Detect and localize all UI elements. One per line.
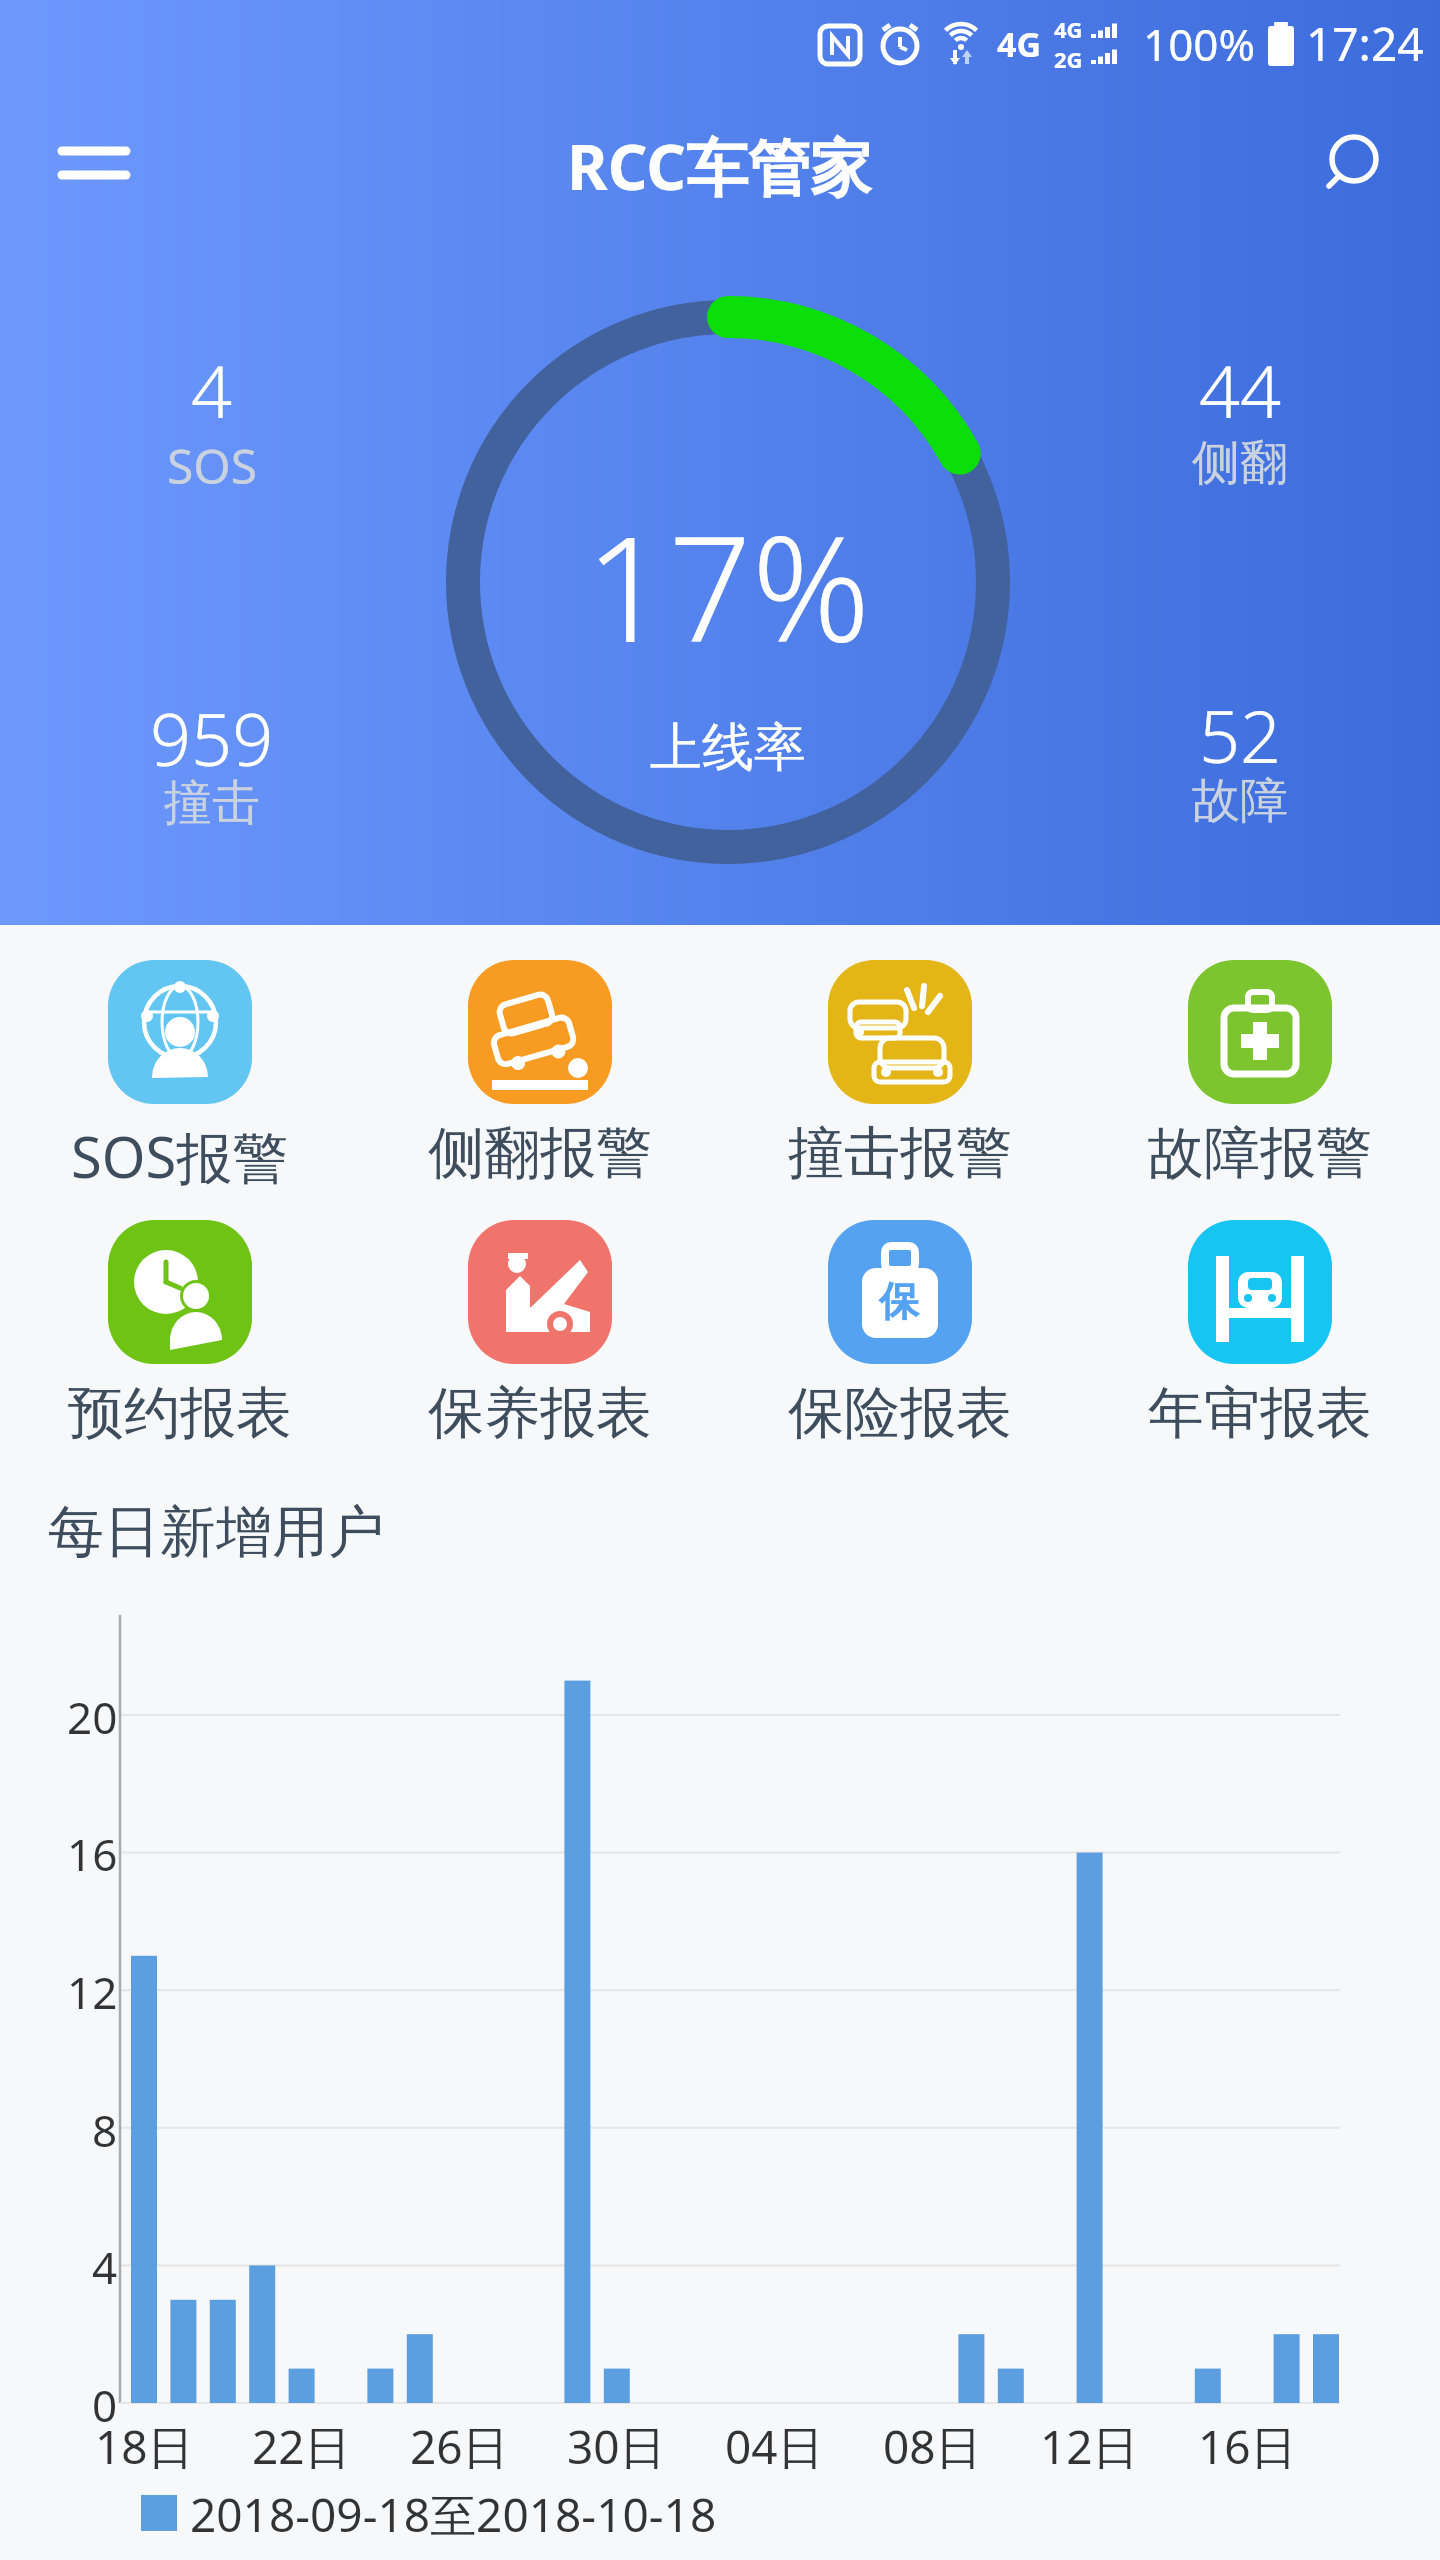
staticText: 08日: [883, 2415, 982, 2471]
staticText: 18日: [95, 2415, 194, 2471]
staticText: 12: [67, 1962, 118, 2018]
staticText: 04日: [725, 2415, 824, 2471]
staticText: 预约报表: [68, 1378, 292, 1449]
button[interactable]: 预约报表: [10, 1220, 350, 1470]
staticText: 100%: [1143, 14, 1256, 74]
button[interactable]: 年审报表: [1090, 1220, 1430, 1470]
button[interactable]: 撞击报警: [730, 960, 1070, 1210]
staticText: 4G: [1054, 14, 1083, 44]
staticText: 故障: [1192, 771, 1288, 831]
button[interactable]: 保: [730, 1220, 1070, 1470]
button[interactable]: 保养报表: [370, 1220, 710, 1470]
staticText: 52: [1199, 686, 1282, 776]
staticText: 959: [150, 689, 274, 779]
staticText: 保养报表: [428, 1378, 652, 1449]
staticText: 0: [92, 2375, 118, 2431]
button[interactable]: [58, 138, 130, 190]
staticText: 20: [67, 1687, 118, 1743]
staticText: 26日: [410, 2415, 509, 2471]
staticText: 17%: [585, 486, 871, 666]
staticText: SOS报警: [71, 1118, 289, 1194]
staticText: 2018-09-18至2018-10-18: [190, 2483, 717, 2543]
button[interactable]: [1305, 115, 1405, 215]
staticText: 撞击: [164, 773, 260, 833]
staticText: 年审报表: [1148, 1378, 1372, 1449]
staticText: 每日新增用户: [48, 1497, 384, 1567]
button[interactable]: 侧翻报警: [370, 960, 710, 1210]
staticText: 16日: [1198, 2415, 1297, 2471]
staticText: 保: [879, 1276, 919, 1326]
staticText: 侧翻报警: [428, 1118, 652, 1189]
staticText: SOS: [167, 433, 258, 493]
button[interactable]: SOS报警: [10, 960, 350, 1210]
staticText: 30日: [567, 2415, 666, 2471]
staticText: 故障报警: [1148, 1118, 1372, 1189]
staticText: 22日: [252, 2415, 351, 2471]
staticText: 撞击报警: [788, 1118, 1012, 1189]
staticText: 2G: [1054, 44, 1083, 74]
staticText: 保险报表: [788, 1378, 1012, 1449]
staticText: 16: [67, 1824, 118, 1880]
staticText: 12日: [1040, 2415, 1139, 2471]
staticText: 上线率: [650, 715, 806, 781]
staticText: RCC车管家: [567, 124, 873, 209]
staticText: 4: [191, 341, 233, 431]
staticText: 4: [92, 2237, 118, 2293]
staticText: 17:24: [1306, 12, 1424, 75]
staticText: 8: [92, 2100, 118, 2156]
button[interactable]: 故障报警: [1090, 960, 1430, 1210]
staticText: 44: [1199, 341, 1282, 431]
staticText: 侧翻: [1192, 433, 1288, 493]
staticText: 4G: [997, 21, 1042, 67]
